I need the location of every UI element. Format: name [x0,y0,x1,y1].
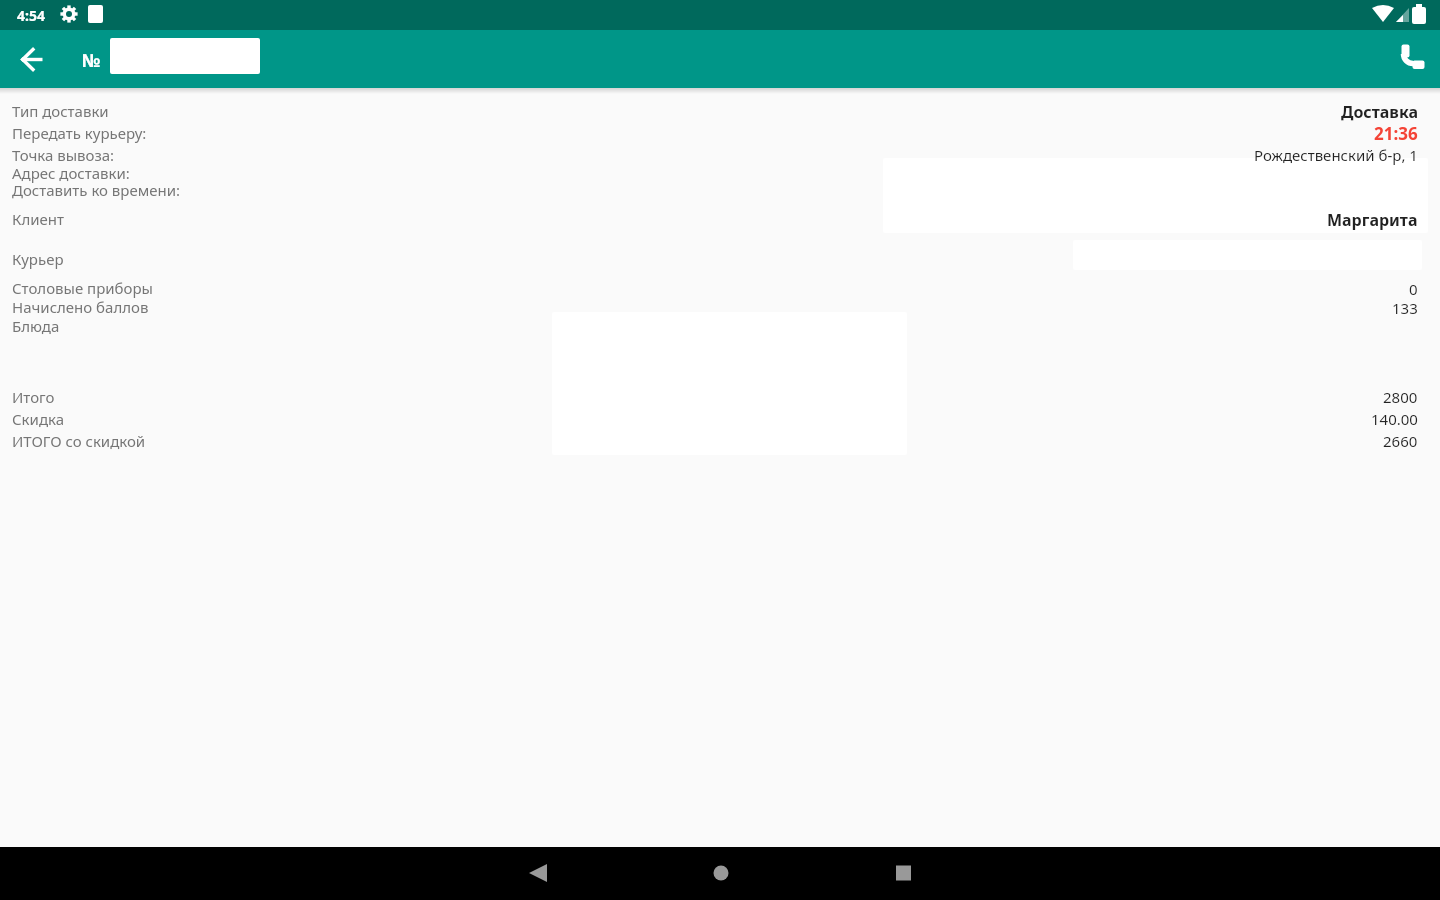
staticText: Курьер [12,249,64,269]
button[interactable] [883,158,1428,233]
button[interactable] [505,849,571,898]
staticText: Клиент [12,209,64,229]
staticText: Скидка [12,409,64,429]
staticText: Столовые приборы [12,278,153,298]
staticText: Доставить ко времени: [12,180,181,200]
button[interactable] [870,849,936,898]
staticText: 0 [1409,279,1418,299]
staticText: Тип доставки [12,101,109,121]
staticText: Маргарита [1327,209,1418,231]
staticText: № [82,48,101,73]
staticText: Начислено баллов [12,297,149,317]
button[interactable] [12,42,54,78]
staticText: 2660 [1383,431,1418,451]
staticText: 21:36 [1374,122,1418,145]
staticText: 133 [1392,298,1418,318]
staticText: Доставка [1341,101,1418,123]
staticText: Блюда [12,316,60,336]
staticText: Точка вывоза: [12,145,115,165]
staticText: Итого [12,387,55,407]
staticText: 2800 [1383,387,1418,407]
staticText: Рождественский б-р, 1 [1254,145,1418,165]
button[interactable] [1394,40,1434,80]
staticText: ИТОГО со скидкой [12,431,146,451]
button[interactable] [110,38,260,74]
staticText: Адрес доставки: [12,163,130,183]
staticText: Передать курьеру: [12,123,147,143]
staticText: 4:54 [17,6,45,25]
staticText: 140.00 [1371,409,1418,429]
button[interactable] [688,849,754,898]
